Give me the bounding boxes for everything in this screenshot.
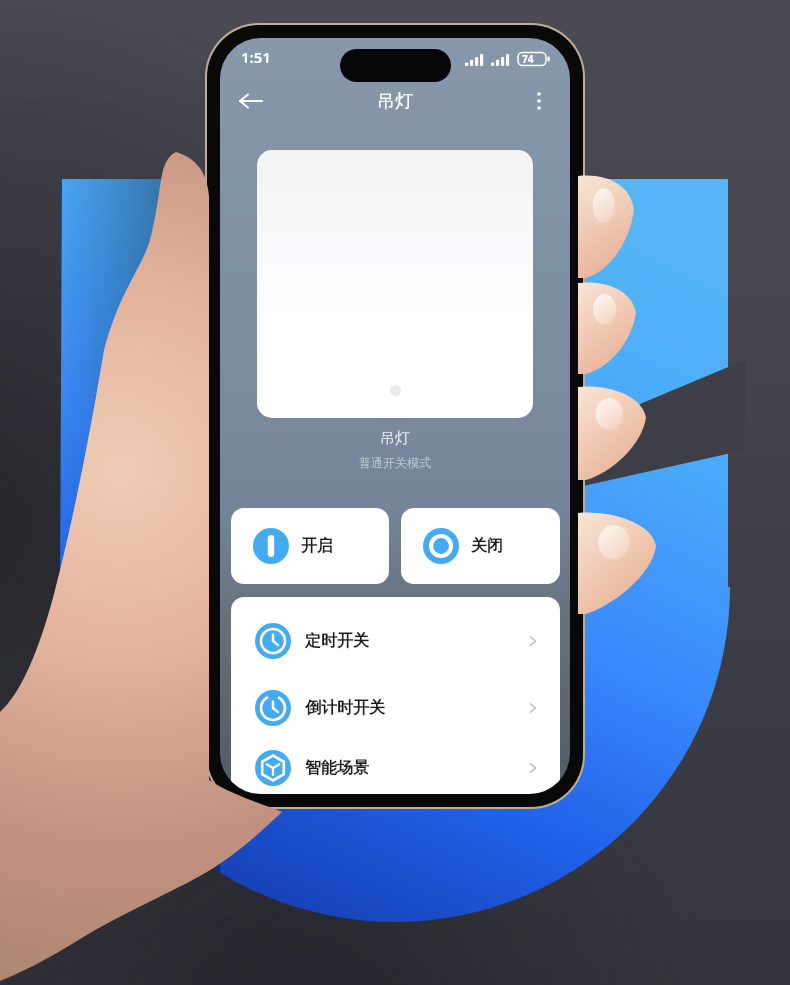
button[interactable]: More options — [518, 80, 560, 122]
staticText: 1:51 — [241, 47, 271, 67]
button[interactable]: 智能场景 — [231, 741, 560, 794]
staticText: 74 — [522, 52, 534, 66]
staticText: 定时开关 — [305, 631, 369, 651]
button[interactable]: 关闭 — [401, 508, 560, 584]
staticText: 智能场景 — [305, 758, 369, 778]
staticText: 开启 — [301, 536, 333, 556]
staticText: 吊灯 — [380, 429, 410, 448]
staticText: 吊灯 — [377, 90, 413, 113]
button[interactable]: Back — [230, 80, 272, 122]
staticText: 普通开关模式 — [359, 455, 431, 470]
button[interactable]: 定时开关 — [231, 607, 560, 674]
button[interactable]: 倒计时开关 — [231, 674, 560, 741]
staticText: 关闭 — [471, 536, 503, 556]
staticText: 倒计时开关 — [305, 698, 385, 718]
button[interactable]: 开启 — [231, 508, 389, 584]
